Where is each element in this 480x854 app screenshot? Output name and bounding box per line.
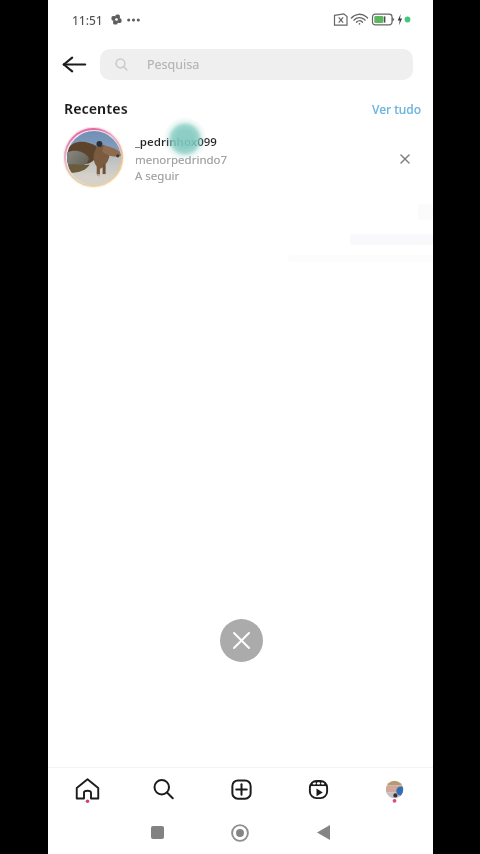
button[interactable]: Create [215,768,267,811]
staticText: A seguir [135,168,180,184]
button[interactable]: Pesquisa [100,49,413,80]
staticText: 11:51 [72,12,103,28]
staticText: Pesquisa [147,56,200,73]
staticText: Ver tudo [372,101,422,117]
button[interactable]: Remove [389,143,421,175]
button[interactable]: Home [216,811,264,854]
staticText: menorpedrindo7 [135,152,228,168]
button[interactable]: Reels [292,768,344,811]
button: Recentes [64,99,128,118]
staticText: Recentes [64,99,128,118]
button[interactable]: Search [137,768,189,811]
staticText: _pedrinhox099 [135,134,217,150]
button[interactable]: Home [61,768,113,811]
button[interactable]: Close [220,619,263,662]
button[interactable]: Recents [133,811,181,854]
button[interactable]: Ver tudo [372,101,422,117]
button[interactable]: Back [299,811,347,854]
button[interactable]: Back [54,44,94,84]
button[interactable]: Profile [368,768,420,811]
button[interactable]: _pedrinhox099 [48,127,433,189]
